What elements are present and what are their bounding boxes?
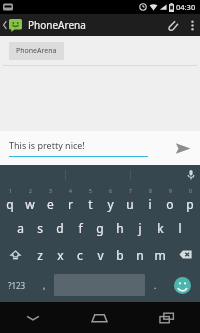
staticText: ?123 (8, 280, 26, 291)
staticText: s (37, 220, 43, 236)
button[interactable]: Navigate up (0, 14, 24, 36)
button[interactable]: a (10, 214, 30, 241)
button[interactable]: 2 (20, 185, 40, 214)
staticText: g (96, 220, 104, 236)
button[interactable]: x (50, 241, 70, 268)
staticText: b (116, 247, 124, 263)
staticText: k (157, 220, 164, 236)
staticText: This is pretty nice! (9, 139, 85, 151)
staticText: PhoneArena (16, 46, 57, 56)
button[interactable]: Hide keyboard (0, 302, 66, 333)
staticText: 3 (49, 188, 52, 195)
button[interactable]: , (34, 268, 54, 302)
button[interactable]: Shift (0, 241, 30, 268)
button[interactable]: l (170, 214, 190, 241)
button[interactable]: Send (166, 131, 200, 165)
staticText: PhoneArena (28, 18, 86, 32)
staticText: , (43, 279, 46, 291)
staticText: 0 (189, 188, 192, 195)
button[interactable]: Home (66, 302, 133, 333)
button[interactable]: c (70, 241, 90, 268)
staticText: e (47, 196, 54, 212)
button[interactable]: j (130, 214, 150, 241)
button[interactable]: 8 (140, 185, 160, 214)
staticText: y (107, 196, 114, 212)
button[interactable]: More options (184, 14, 200, 36)
button[interactable]: b (110, 241, 130, 268)
staticText: l (178, 220, 182, 236)
button[interactable]: 0 (180, 185, 200, 214)
button[interactable]: v (90, 241, 110, 268)
button[interactable]: n (130, 241, 150, 268)
staticText: 5 (89, 188, 92, 195)
button[interactable]: d (50, 214, 70, 241)
staticText: p (186, 196, 194, 212)
staticText: 4 (69, 188, 72, 195)
staticText: h (116, 220, 124, 236)
staticText: w (25, 196, 35, 212)
button[interactable]: Voice input (131, 165, 195, 185)
button[interactable]: 4 (60, 185, 80, 214)
button[interactable]: m (150, 241, 170, 268)
button[interactable]: . (145, 268, 165, 302)
staticText: r (68, 196, 73, 212)
staticText: 6 (109, 188, 112, 195)
button[interactable]: h (110, 214, 130, 241)
staticText: d (56, 220, 64, 236)
button[interactable]: 6 (100, 185, 120, 214)
staticText: o (166, 196, 174, 212)
staticText: 7 (129, 188, 132, 195)
staticText: 04:30 (176, 2, 196, 12)
button[interactable]: Attach (160, 14, 184, 36)
staticText: v (97, 247, 104, 263)
button[interactable]: This is pretty nice! (9, 139, 166, 157)
staticText: 9 (169, 188, 172, 195)
button[interactable]: Recent apps (133, 302, 200, 333)
button[interactable]: 9 (160, 185, 180, 214)
button[interactable]: 1 (0, 185, 20, 214)
button[interactable]: 3 (40, 185, 60, 214)
staticText: 1 (9, 188, 12, 195)
staticText: m (154, 247, 166, 263)
button[interactable]: 5 (80, 185, 100, 214)
staticText: z (37, 247, 43, 263)
staticText: . (154, 279, 157, 291)
button[interactable]: ?123 (0, 268, 34, 302)
button[interactable]: PhoneArena (16, 46, 57, 56)
staticText: x (57, 247, 64, 263)
staticText: f (78, 220, 83, 236)
button[interactable]: s (30, 214, 50, 241)
button[interactable]: 7 (120, 185, 140, 214)
staticText: c (77, 247, 83, 263)
button[interactable]: Backspace (170, 241, 200, 268)
staticText: i (148, 196, 152, 212)
staticText: a (17, 220, 24, 236)
staticText: q (6, 196, 14, 212)
staticText: 2 (29, 188, 32, 195)
button[interactable]: z (30, 241, 50, 268)
staticText: n (136, 247, 144, 263)
staticText: j (138, 220, 142, 236)
staticText: u (126, 196, 134, 212)
button[interactable]: k (150, 214, 170, 241)
button[interactable]: Emoji (165, 268, 200, 302)
button[interactable]: g (90, 214, 110, 241)
staticText: t (88, 196, 93, 212)
button[interactable]: f (70, 214, 90, 241)
staticText: 8 (149, 188, 152, 195)
